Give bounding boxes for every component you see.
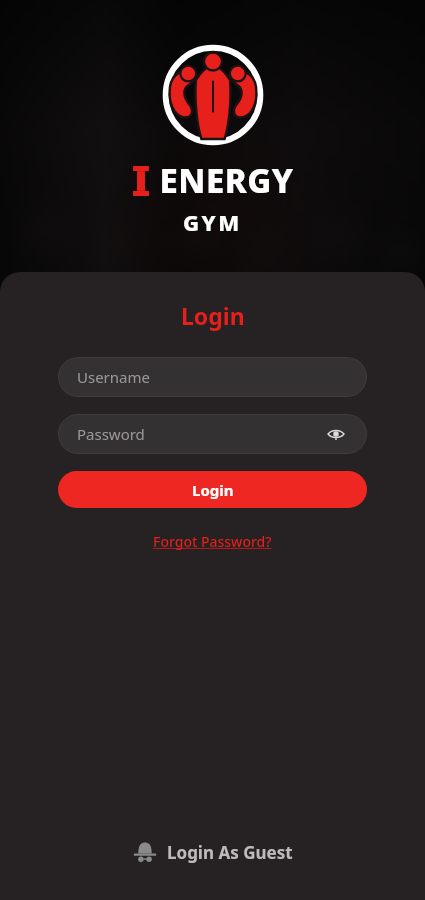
staticText: Forgot Password? [153,532,272,551]
button[interactable]: Forgot Password? [147,529,278,554]
staticText: Login As Guest [167,841,293,864]
button[interactable]: Show password [325,423,347,445]
staticText: Login [192,480,234,500]
staticText: Login [181,300,245,331]
button[interactable]: Password [58,414,367,454]
button[interactable]: Login As Guest [119,832,307,872]
button[interactable]: Username [58,357,367,397]
staticText: GYM [183,207,242,237]
button[interactable]: Login [58,471,367,508]
staticText: Password [77,424,145,444]
staticText: ENERGY [159,158,294,203]
staticText: Username [77,367,150,387]
